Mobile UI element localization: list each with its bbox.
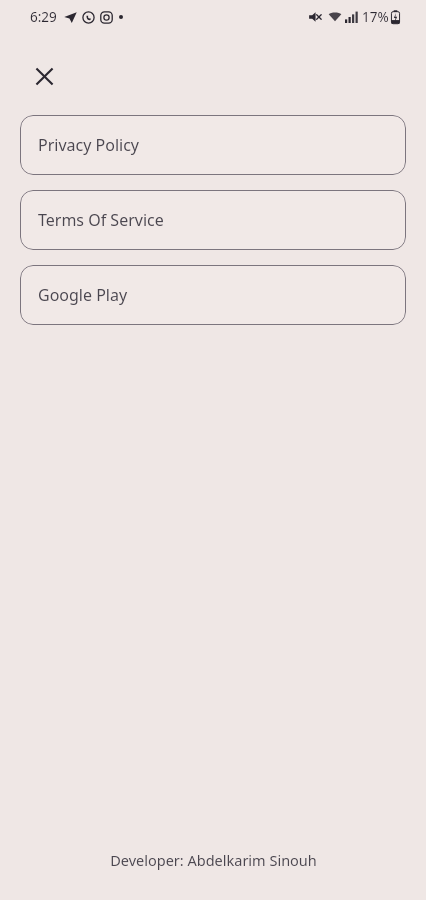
staticText: 6:29 bbox=[30, 8, 57, 26]
button[interactable]: Close bbox=[22, 54, 66, 98]
staticText: Terms Of Service bbox=[38, 209, 164, 231]
staticText: Developer: Abdelkarim Sinouh bbox=[110, 850, 317, 870]
button[interactable]: Google Play bbox=[20, 265, 406, 325]
staticText: 17% bbox=[362, 8, 389, 26]
button[interactable]: Privacy Policy bbox=[20, 115, 406, 175]
staticText: Privacy Policy bbox=[38, 134, 139, 156]
staticText: Google Play bbox=[38, 284, 128, 306]
button[interactable]: Terms Of Service bbox=[20, 190, 406, 250]
